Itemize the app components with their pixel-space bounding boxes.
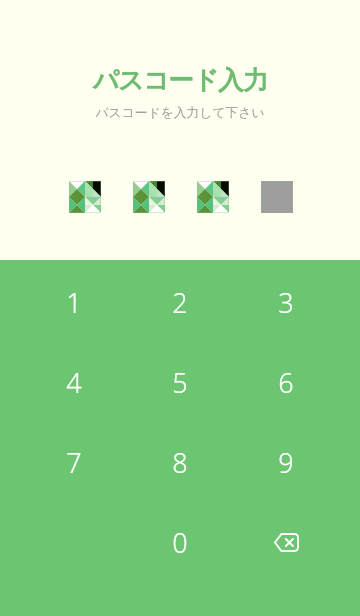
button[interactable]: Backspace bbox=[233, 502, 339, 582]
button[interactable]: 1 bbox=[21, 262, 127, 342]
button[interactable]: 9 bbox=[233, 422, 339, 502]
button[interactable]: 4 bbox=[21, 342, 127, 422]
staticText: 3 bbox=[278, 284, 294, 321]
staticText: 8 bbox=[172, 444, 188, 481]
staticText: 9 bbox=[278, 444, 294, 481]
button[interactable]: 7 bbox=[21, 422, 127, 502]
staticText: 7 bbox=[66, 444, 82, 481]
button[interactable]: 6 bbox=[233, 342, 339, 422]
staticText: パスコードを入力して下さい bbox=[0, 105, 360, 121]
button[interactable]: 0 bbox=[127, 502, 233, 582]
staticText: 4 bbox=[66, 364, 82, 401]
button[interactable]: 2 bbox=[127, 262, 233, 342]
staticText: 2 bbox=[172, 284, 188, 321]
button[interactable]: 8 bbox=[127, 422, 233, 502]
staticText: 6 bbox=[278, 364, 294, 401]
staticText: 0 bbox=[172, 524, 188, 561]
button[interactable]: 3 bbox=[233, 262, 339, 342]
staticText: 5 bbox=[172, 364, 188, 401]
button[interactable]: 5 bbox=[127, 342, 233, 422]
staticText: パスコード入力 bbox=[0, 64, 360, 96]
staticText: 1 bbox=[66, 284, 82, 321]
